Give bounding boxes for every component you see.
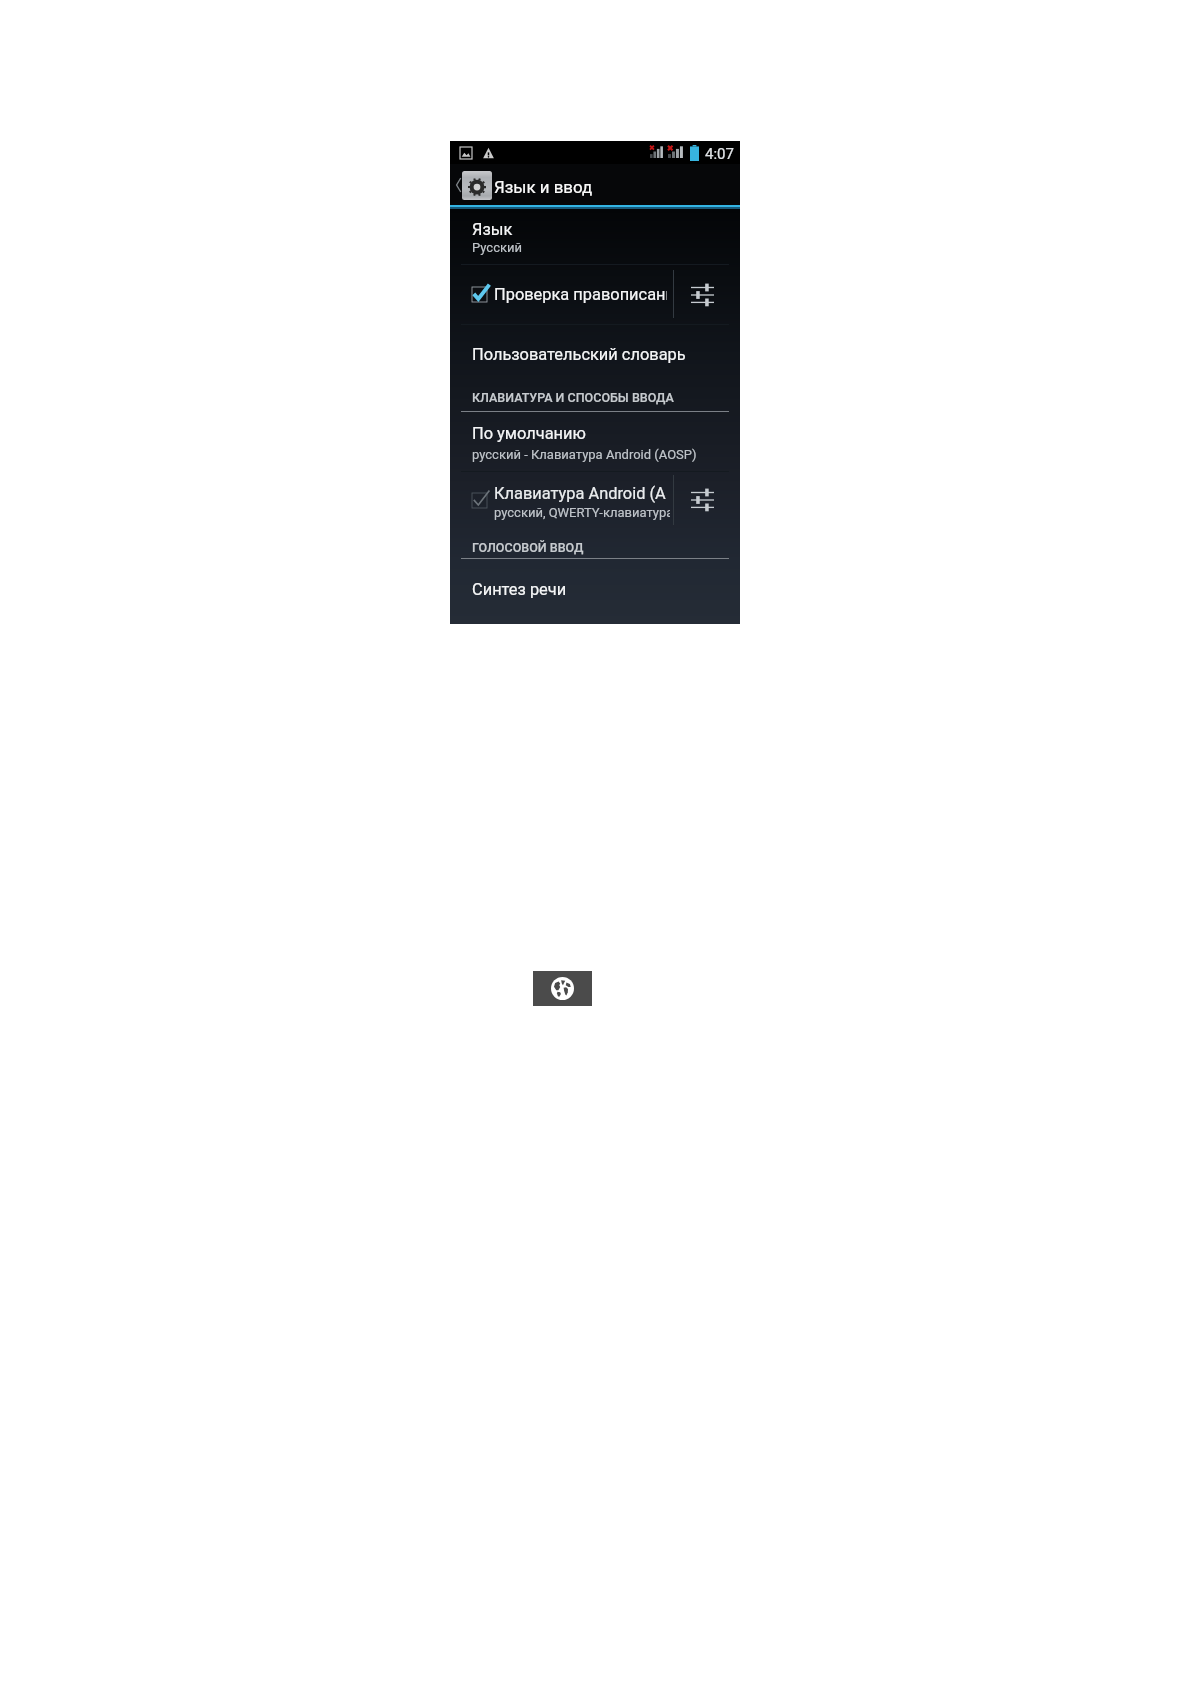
- staticText: ГОЛОСОВОЙ ВВОД: [472, 540, 584, 555]
- staticText: Пользовательский словарь: [472, 345, 686, 364]
- staticText: КЛАВИАТУРА И СПОСОБЫ ВВОДА: [472, 390, 674, 405]
- staticText: Клавиатура Android (AOSP): [494, 484, 666, 503]
- staticText: русский - Клавиатура Android (AOSP): [472, 447, 697, 462]
- button[interactable]: [450, 565, 740, 603]
- staticText: Язык и ввод: [494, 177, 593, 197]
- button[interactable]: [450, 330, 740, 366]
- staticText: русский, QWERTY-клавиатура: [494, 505, 670, 520]
- button[interactable]: Globe: [533, 971, 592, 1006]
- staticText: Проверка правописания: [494, 285, 667, 304]
- button[interactable]: Back: [450, 164, 600, 205]
- staticText: По умолчанию: [472, 424, 586, 443]
- staticText: Русский: [472, 240, 523, 255]
- staticText: Язык: [472, 220, 513, 239]
- button[interactable]: Settings: [673, 269, 740, 324]
- staticText: Синтез речи: [472, 580, 567, 599]
- button[interactable]: [450, 475, 673, 527]
- button[interactable]: [450, 413, 740, 469]
- button[interactable]: Settings: [673, 475, 740, 527]
- button[interactable]: [450, 269, 673, 324]
- staticText: 4:07: [705, 145, 734, 163]
